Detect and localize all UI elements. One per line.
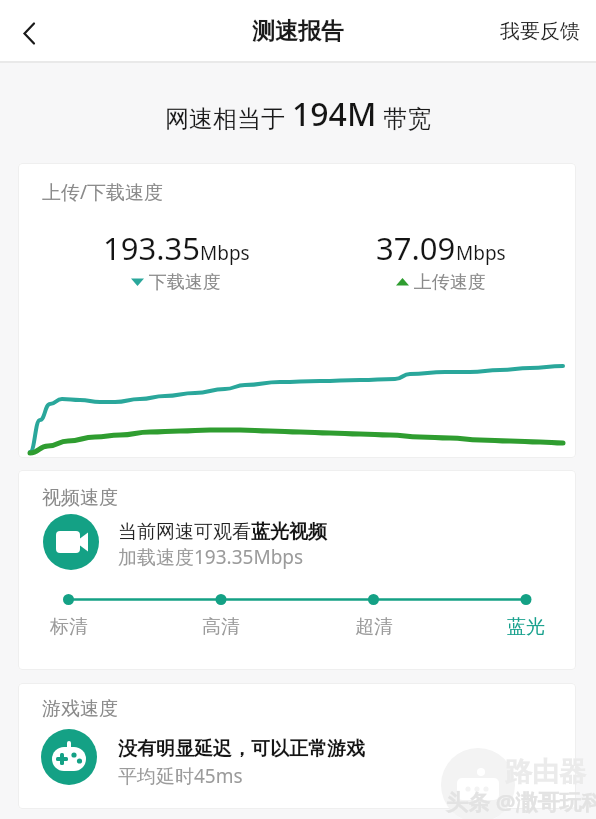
button[interactable] <box>0 0 52 63</box>
staticText: 我要反馈 <box>500 19 580 44</box>
staticText: 路由器 <box>505 755 586 789</box>
staticText: 测速报告 <box>252 17 344 46</box>
staticText: 超清 <box>355 615 393 639</box>
staticText: 194M <box>292 92 377 136</box>
button[interactable]: 高清 <box>181 615 261 639</box>
staticText: 网速相当于 <box>165 101 292 134</box>
button[interactable]: 超清 <box>334 615 414 639</box>
staticText: 当前网速可观看 <box>118 520 251 544</box>
staticText: 193.35 <box>103 227 200 269</box>
staticText: 没有明显延迟，可以正常游戏 <box>118 737 365 761</box>
staticText: 高清 <box>202 615 240 639</box>
staticText: 下载速度 <box>144 269 221 294</box>
staticText: 头条 @潵哥玩科技 <box>446 786 596 816</box>
staticText: 37.09 <box>376 227 456 269</box>
staticText: 加载速度193.35Mbps <box>118 544 304 570</box>
button[interactable]: 我要反馈 <box>500 19 596 44</box>
staticText: 游戏速度 <box>42 697 118 721</box>
staticText: Mbps <box>200 240 250 266</box>
staticText: Mbps <box>456 240 506 266</box>
staticText: 蓝光 <box>507 615 545 639</box>
button[interactable] <box>41 729 97 785</box>
staticText: 上传/下载速度 <box>42 179 164 205</box>
staticText: 平均延时45ms <box>118 763 243 789</box>
staticText: 带宽 <box>377 101 432 134</box>
button[interactable] <box>43 514 99 570</box>
staticText: 上传速度 <box>409 269 486 294</box>
staticText: 标清 <box>50 615 88 639</box>
button[interactable]: 标清 <box>29 615 109 639</box>
staticText: 视频速度 <box>42 486 118 510</box>
staticText: 蓝光视频 <box>251 520 327 544</box>
button[interactable]: 蓝光 <box>486 615 566 639</box>
